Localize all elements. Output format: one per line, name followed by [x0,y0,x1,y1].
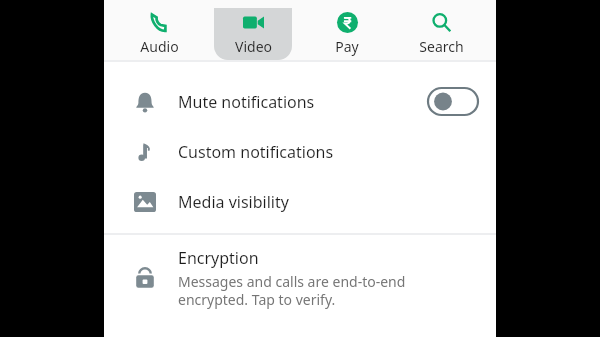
staticText: Video [235,37,272,56]
button[interactable]: Audio call [120,8,198,60]
other: Audio call [149,12,170,33]
staticText: Messages and calls are end-to-end encryp… [178,272,406,309]
other: Video call [243,12,264,33]
button[interactable]: Mute notifications [104,76,496,127]
staticText: Custom notifications [178,141,334,163]
other: Search [431,12,452,33]
staticText: Media visibility [178,191,289,213]
button[interactable]: Pay [308,8,386,60]
staticText: Audio [140,37,179,56]
button[interactable]: Media visibility [104,177,496,227]
other: Pay [337,12,358,33]
staticText: Mute notifications [178,91,315,113]
button[interactable]: Search [402,8,480,60]
staticText: Pay [335,37,359,56]
button[interactable]: Custom notifications [104,127,496,177]
button[interactable]: Mute notifications toggle [428,88,478,115]
staticText: Search [419,37,464,56]
button[interactable]: Encryption [104,235,496,321]
staticText: Encryption [178,247,259,269]
button[interactable]: Video call [214,8,292,60]
